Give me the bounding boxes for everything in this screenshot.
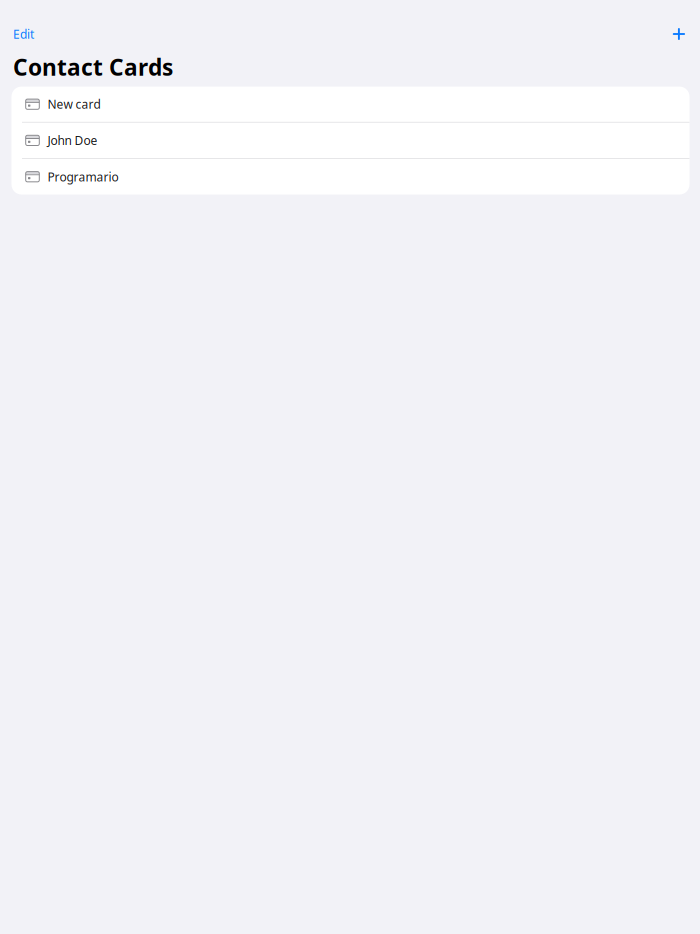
button[interactable]: New card <box>11 87 689 123</box>
button[interactable]: Programario <box>11 159 689 194</box>
button[interactable]: Add card <box>664 21 700 47</box>
staticText: Contact Cards <box>13 52 173 82</box>
staticText: Programario <box>48 169 119 185</box>
staticText: John Doe <box>48 132 98 148</box>
button[interactable]: John Doe <box>11 123 689 159</box>
staticText: New card <box>48 96 101 112</box>
button[interactable]: Edit <box>6 20 42 48</box>
staticText: Edit <box>13 26 34 42</box>
